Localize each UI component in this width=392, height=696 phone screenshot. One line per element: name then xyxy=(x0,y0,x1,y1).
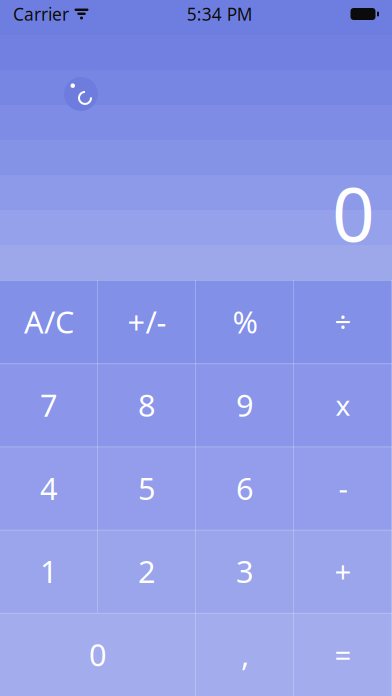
staticText: % xyxy=(232,301,257,342)
button[interactable]: - xyxy=(294,446,392,530)
staticText: ÷ xyxy=(334,302,351,341)
staticText: x xyxy=(335,386,350,423)
staticText: 3 xyxy=(236,551,254,591)
button[interactable]: +/- xyxy=(98,280,196,363)
staticText: , xyxy=(241,634,249,675)
staticText: 0 xyxy=(332,163,375,262)
button[interactable]: 9 xyxy=(196,363,294,446)
staticText: 5 xyxy=(138,468,156,508)
button[interactable]: % xyxy=(196,280,294,363)
button[interactable]: 0 xyxy=(0,613,196,696)
button[interactable]: = xyxy=(294,613,392,696)
button[interactable]: 4 xyxy=(0,446,98,530)
staticText: Carrier xyxy=(13,2,69,25)
staticText: 9 xyxy=(236,384,254,425)
staticText: 6 xyxy=(236,468,254,508)
button[interactable]: ÷ xyxy=(294,280,392,363)
button[interactable]: 1 xyxy=(0,530,98,613)
staticText: - xyxy=(338,468,347,507)
button[interactable]: 2 xyxy=(98,530,196,613)
button[interactable]: 5 xyxy=(98,446,196,530)
staticText: = xyxy=(334,635,351,674)
staticText: 8 xyxy=(138,384,156,425)
staticText: +/- xyxy=(127,301,166,342)
button[interactable]: x xyxy=(294,363,392,446)
button[interactable]: , xyxy=(196,613,294,696)
button[interactable]: + xyxy=(294,530,392,613)
button[interactable]: 6 xyxy=(196,446,294,530)
staticText: 7 xyxy=(40,384,58,425)
staticText: 5:34 PM xyxy=(187,2,253,25)
staticText: A/C xyxy=(24,301,74,342)
staticText: 0 xyxy=(89,634,107,675)
button[interactable]: A/C xyxy=(0,280,98,363)
staticText: 1 xyxy=(40,551,58,591)
button[interactable]: Undo last entry xyxy=(64,77,98,111)
staticText: 2 xyxy=(138,551,156,591)
button[interactable]: 7 xyxy=(0,363,98,446)
staticText: + xyxy=(334,552,351,591)
staticText: 4 xyxy=(40,468,58,508)
button[interactable]: 8 xyxy=(98,363,196,446)
button[interactable]: 3 xyxy=(196,530,294,613)
